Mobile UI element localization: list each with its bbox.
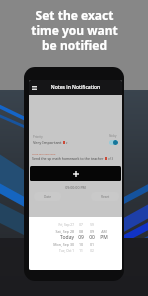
staticText: 59 [87,223,97,227]
staticText: 00 [87,234,97,241]
staticText: Mon, Sep 30 [29,242,74,247]
staticText: 07 [76,223,86,227]
button[interactable]: Date [34,192,61,201]
staticText: Very Important [33,140,62,145]
staticText: 09:00:00 PM [29,185,122,190]
staticText: AM [98,229,110,234]
button[interactable]: Open navigation menu [32,86,37,90]
staticText: Today [29,234,74,241]
staticText: 08 [76,229,86,234]
staticText: Date [44,195,52,199]
staticText: Send the sp math homework to the teacher [32,156,104,161]
staticText: Tue, Oct 1 [29,249,74,253]
staticText: Reset [101,195,110,199]
button[interactable]: Tue, Oct 1 [29,249,122,253]
button[interactable]: Fri, Sep 27 [29,223,122,227]
staticText: ▾ [66,141,68,144]
staticText: Set the exact time you want be notified [31,7,118,53]
button[interactable]: Mon, Sep 30 [29,242,122,247]
button[interactable]: Reset [91,192,119,201]
staticText: 09 [87,229,97,234]
staticText: of 3 [108,157,113,161]
staticText: 02 [87,249,97,253]
staticText: 09 [76,234,86,241]
staticText: Notes in Notification [33,84,118,91]
staticText: 10 [76,242,86,247]
staticText: PM [98,234,110,241]
staticText: Sat, Sep 28 [29,229,74,234]
staticText: 01 [87,242,97,247]
button[interactable]: Sat, Sep 28 [29,229,122,234]
button[interactable]: Open navigation menu [29,80,122,95]
button[interactable]: Sticky toggle [109,140,118,145]
staticText: Priority [33,135,43,139]
staticText: Sticky [109,134,117,138]
staticText: Write your note here [32,152,56,155]
button[interactable]: Today [29,234,122,241]
button[interactable]: Add note [30,166,121,181]
staticText: Fri, Sep 27 [29,223,74,227]
staticText: 11 [76,249,86,253]
